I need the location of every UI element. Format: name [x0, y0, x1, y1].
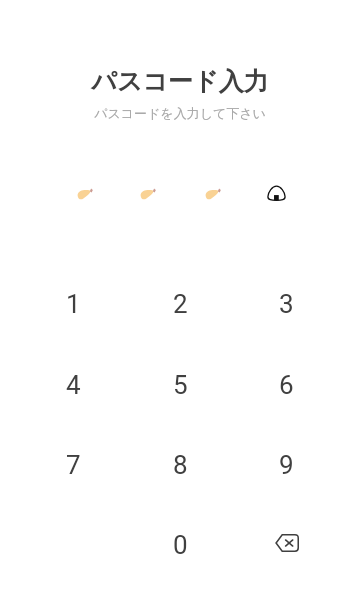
button[interactable]: 9	[233, 425, 340, 505]
button[interactable]: 8	[127, 425, 234, 505]
button[interactable]: 7	[20, 425, 127, 505]
button[interactable]: 3	[233, 264, 340, 344]
button[interactable]: 2	[127, 264, 234, 344]
staticText: 7	[66, 450, 81, 480]
staticText: 6	[279, 370, 294, 400]
staticText: 1	[66, 289, 81, 319]
button[interactable]: Delete	[233, 505, 340, 585]
staticText: 5	[173, 370, 188, 400]
staticText: パスコードを入力して下さい	[94, 105, 266, 121]
button[interactable]: 6	[233, 345, 340, 425]
staticText: 8	[173, 450, 188, 480]
button[interactable]: 0	[127, 505, 234, 585]
staticText: 9	[279, 450, 294, 480]
button[interactable]: 5	[127, 345, 234, 425]
button[interactable]: 4	[20, 345, 127, 425]
button[interactable]: 1	[20, 264, 127, 344]
staticText: 2	[173, 289, 188, 319]
staticText: パスコード入力	[91, 66, 269, 97]
staticText: 3	[279, 289, 294, 319]
staticText: 4	[66, 370, 81, 400]
staticText: 0	[173, 530, 188, 560]
